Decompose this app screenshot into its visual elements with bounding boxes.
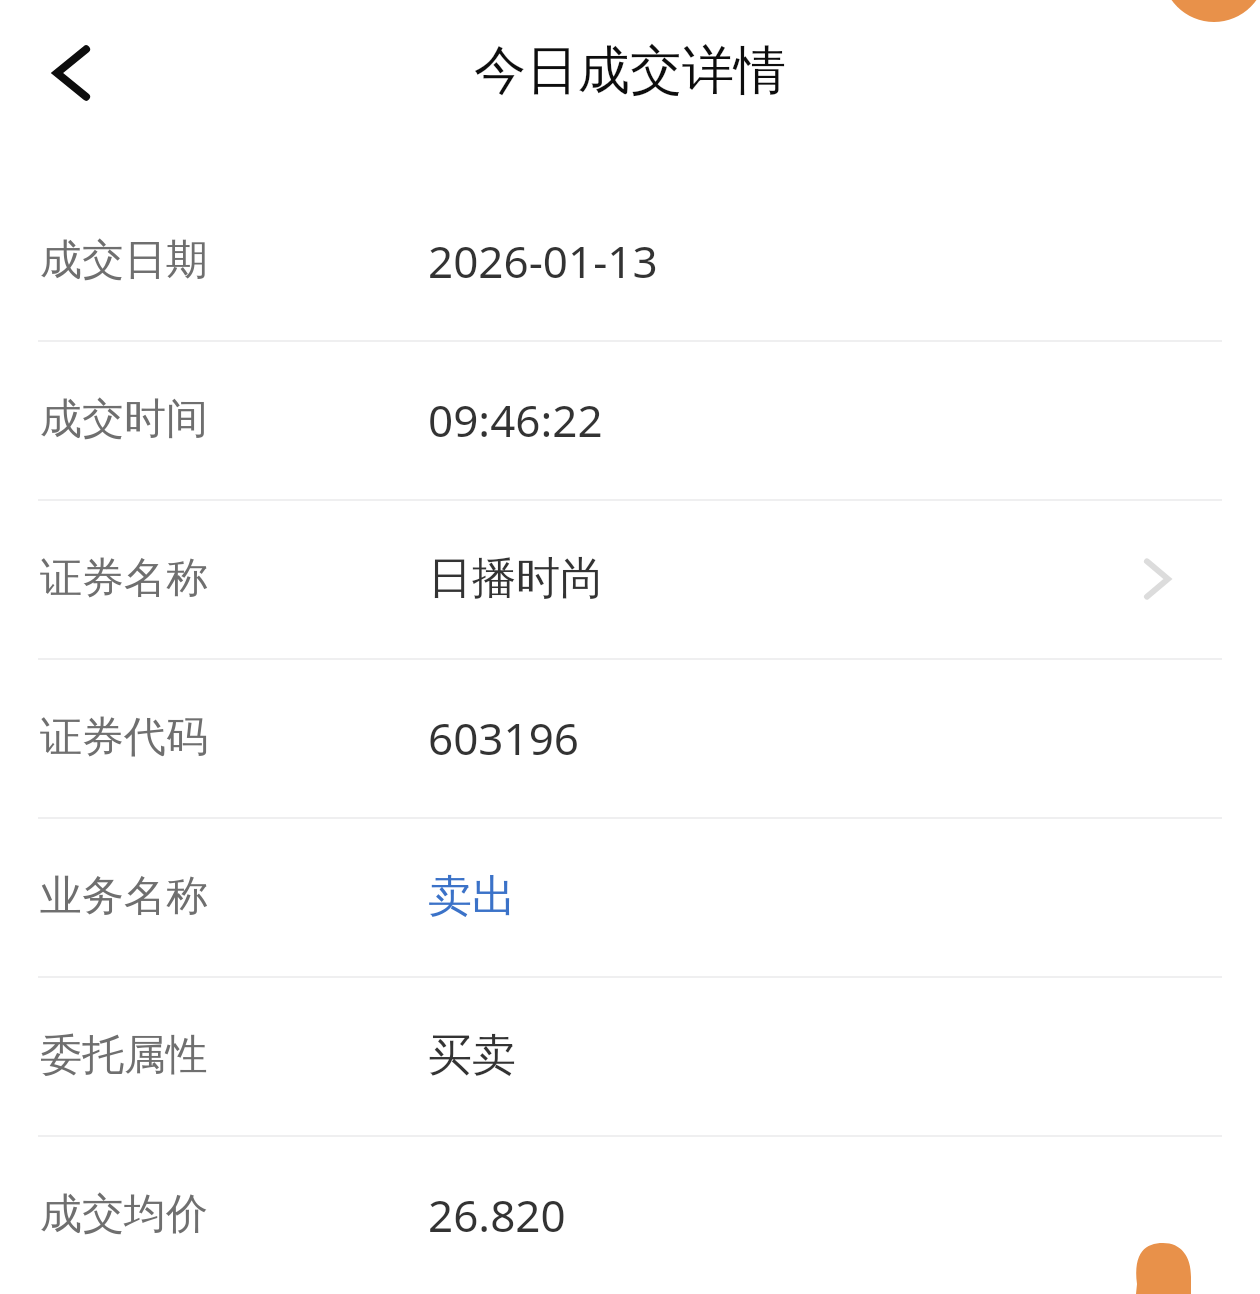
- staticText: 卖出: [428, 869, 1128, 924]
- staticText: 26.820: [428, 1185, 1128, 1245]
- staticText: 委托属性: [40, 1029, 428, 1082]
- staticText: 09:46:22: [428, 390, 1128, 450]
- button[interactable]: 委托属性: [0, 976, 1260, 1135]
- button[interactable]: Back: [16, 18, 126, 128]
- button[interactable]: 成交均价: [0, 1135, 1260, 1294]
- button[interactable]: 成交日期: [0, 181, 1260, 340]
- button[interactable]: 业务名称: [0, 817, 1260, 976]
- staticText: 今日成交详情: [0, 38, 1260, 104]
- staticText: 业务名称: [40, 870, 428, 923]
- staticText: 成交均价: [40, 1188, 428, 1241]
- button[interactable]: 证券代码: [0, 658, 1260, 817]
- button[interactable]: 证券名称: [0, 499, 1260, 658]
- staticText: 成交日期: [40, 234, 428, 287]
- staticText: 成交时间: [40, 393, 428, 446]
- button[interactable]: 成交时间: [0, 340, 1260, 499]
- staticText: 买卖: [428, 1028, 1128, 1083]
- staticText: 证券名称: [40, 552, 428, 605]
- staticText: 证券代码: [40, 711, 428, 764]
- staticText: 日播时尚: [428, 551, 1128, 606]
- staticText: 603196: [428, 708, 1128, 768]
- staticText: 2026-01-13: [428, 231, 1128, 291]
